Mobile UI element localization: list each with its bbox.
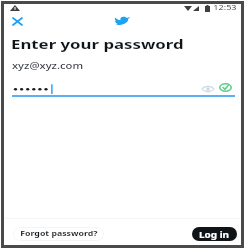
staticText: 12:53 bbox=[213, 3, 237, 13]
staticText: xyz@xyz.com bbox=[12, 59, 83, 71]
staticText: Enter your password bbox=[11, 36, 185, 52]
button[interactable]: Close bbox=[7, 12, 27, 30]
button[interactable]: Log in bbox=[192, 227, 237, 241]
staticText: Forgot password? bbox=[20, 229, 98, 239]
staticText: Log in bbox=[199, 229, 230, 240]
button[interactable]: Forgot password? bbox=[13, 227, 104, 241]
button[interactable]: Show password bbox=[198, 80, 217, 97]
